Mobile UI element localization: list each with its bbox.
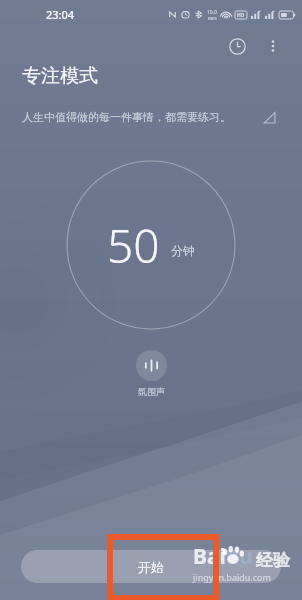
staticText: HD [237, 12, 245, 19]
button[interactable]: 50 [107, 214, 195, 277]
staticText: Bai [193, 542, 226, 571]
staticText: 人生中值得做的每一件事情，都需要练习。 [22, 110, 258, 124]
staticText: jingyan.baidu.com [193, 571, 271, 583]
button[interactable]: 更多 [256, 29, 290, 63]
staticText: du [226, 542, 253, 571]
button[interactable]: 开始 [21, 550, 281, 583]
staticText: 开始 [138, 559, 164, 575]
staticText: 分钟 [171, 243, 195, 258]
staticText: 23:04 [46, 7, 75, 22]
staticText: 10.0 [207, 9, 217, 16]
staticText: 专注模式 [22, 64, 98, 88]
button[interactable]: 氛围声 [136, 350, 167, 397]
staticText: 氛围声 [138, 386, 165, 397]
staticText: 经验 [256, 550, 290, 571]
button[interactable]: 历史记录 [220, 29, 254, 63]
button[interactable]: 人生中值得做的每一件事情，都需要练习。 [22, 106, 280, 128]
other: 编辑 [258, 106, 280, 128]
staticText: KB/S [208, 16, 217, 20]
staticText: 50 [107, 214, 160, 277]
